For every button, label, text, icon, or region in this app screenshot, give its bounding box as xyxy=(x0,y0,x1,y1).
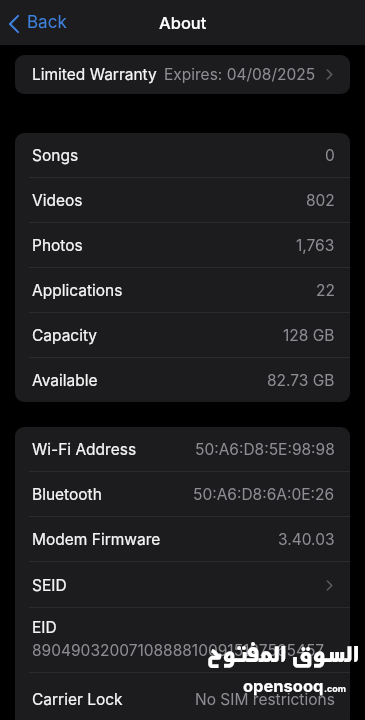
staticText: About xyxy=(159,13,207,33)
staticText: Videos xyxy=(32,191,83,210)
staticText: EID xyxy=(32,618,57,637)
staticText: No SIM restrictions xyxy=(195,690,335,709)
button[interactable]: Videos xyxy=(15,178,350,223)
staticText: 0 xyxy=(325,146,335,165)
staticText: 1,763 xyxy=(296,236,335,255)
staticText: Modem Firmware xyxy=(32,530,161,549)
staticText: opensooq xyxy=(243,676,324,696)
staticText: Songs xyxy=(32,146,79,165)
staticText: SEID xyxy=(32,576,67,595)
staticText: 89049032007108888100915127565457 xyxy=(32,641,325,660)
staticText: 802 xyxy=(306,191,335,210)
staticText: Limited Warranty xyxy=(32,65,157,84)
button[interactable]: EID xyxy=(15,608,350,673)
staticText: Capacity xyxy=(32,326,98,345)
staticText: Available xyxy=(32,371,98,390)
button[interactable]: Songs xyxy=(15,133,350,178)
button[interactable]: Limited Warranty xyxy=(15,55,350,94)
staticText: Back xyxy=(27,12,67,33)
button[interactable]: Available xyxy=(15,358,350,402)
button[interactable]: Photos xyxy=(15,223,350,268)
staticText: 50:A6:D8:6A:0E:26 xyxy=(193,485,335,504)
staticText: Expires: 04/08/2025 xyxy=(164,65,316,84)
staticText: 3.40.03 xyxy=(278,530,335,549)
staticText: Carrier Lock xyxy=(32,690,123,709)
button[interactable]: Carrier Lock xyxy=(15,673,350,720)
button[interactable]: Back xyxy=(1,7,73,38)
staticText: Bluetooth xyxy=(32,485,102,504)
staticText: 82.73 GB xyxy=(267,371,335,390)
staticText: 128 GB xyxy=(283,326,335,345)
button[interactable]: Applications xyxy=(15,268,350,313)
staticText: السوق المفتوح xyxy=(207,638,360,671)
staticText: 50:A6:D8:5E:98:98 xyxy=(195,440,335,459)
button[interactable]: Wi-Fi Address xyxy=(15,427,350,472)
staticText: 22 xyxy=(316,281,335,300)
staticText: Wi-Fi Address xyxy=(32,440,137,459)
button[interactable]: Capacity xyxy=(15,313,350,358)
staticText: Photos xyxy=(32,236,83,255)
button[interactable]: SEID xyxy=(15,562,350,608)
staticText: .com xyxy=(324,683,347,694)
button[interactable]: Modem Firmware xyxy=(15,517,350,562)
button[interactable]: Bluetooth xyxy=(15,472,350,517)
staticText: Applications xyxy=(32,281,123,300)
